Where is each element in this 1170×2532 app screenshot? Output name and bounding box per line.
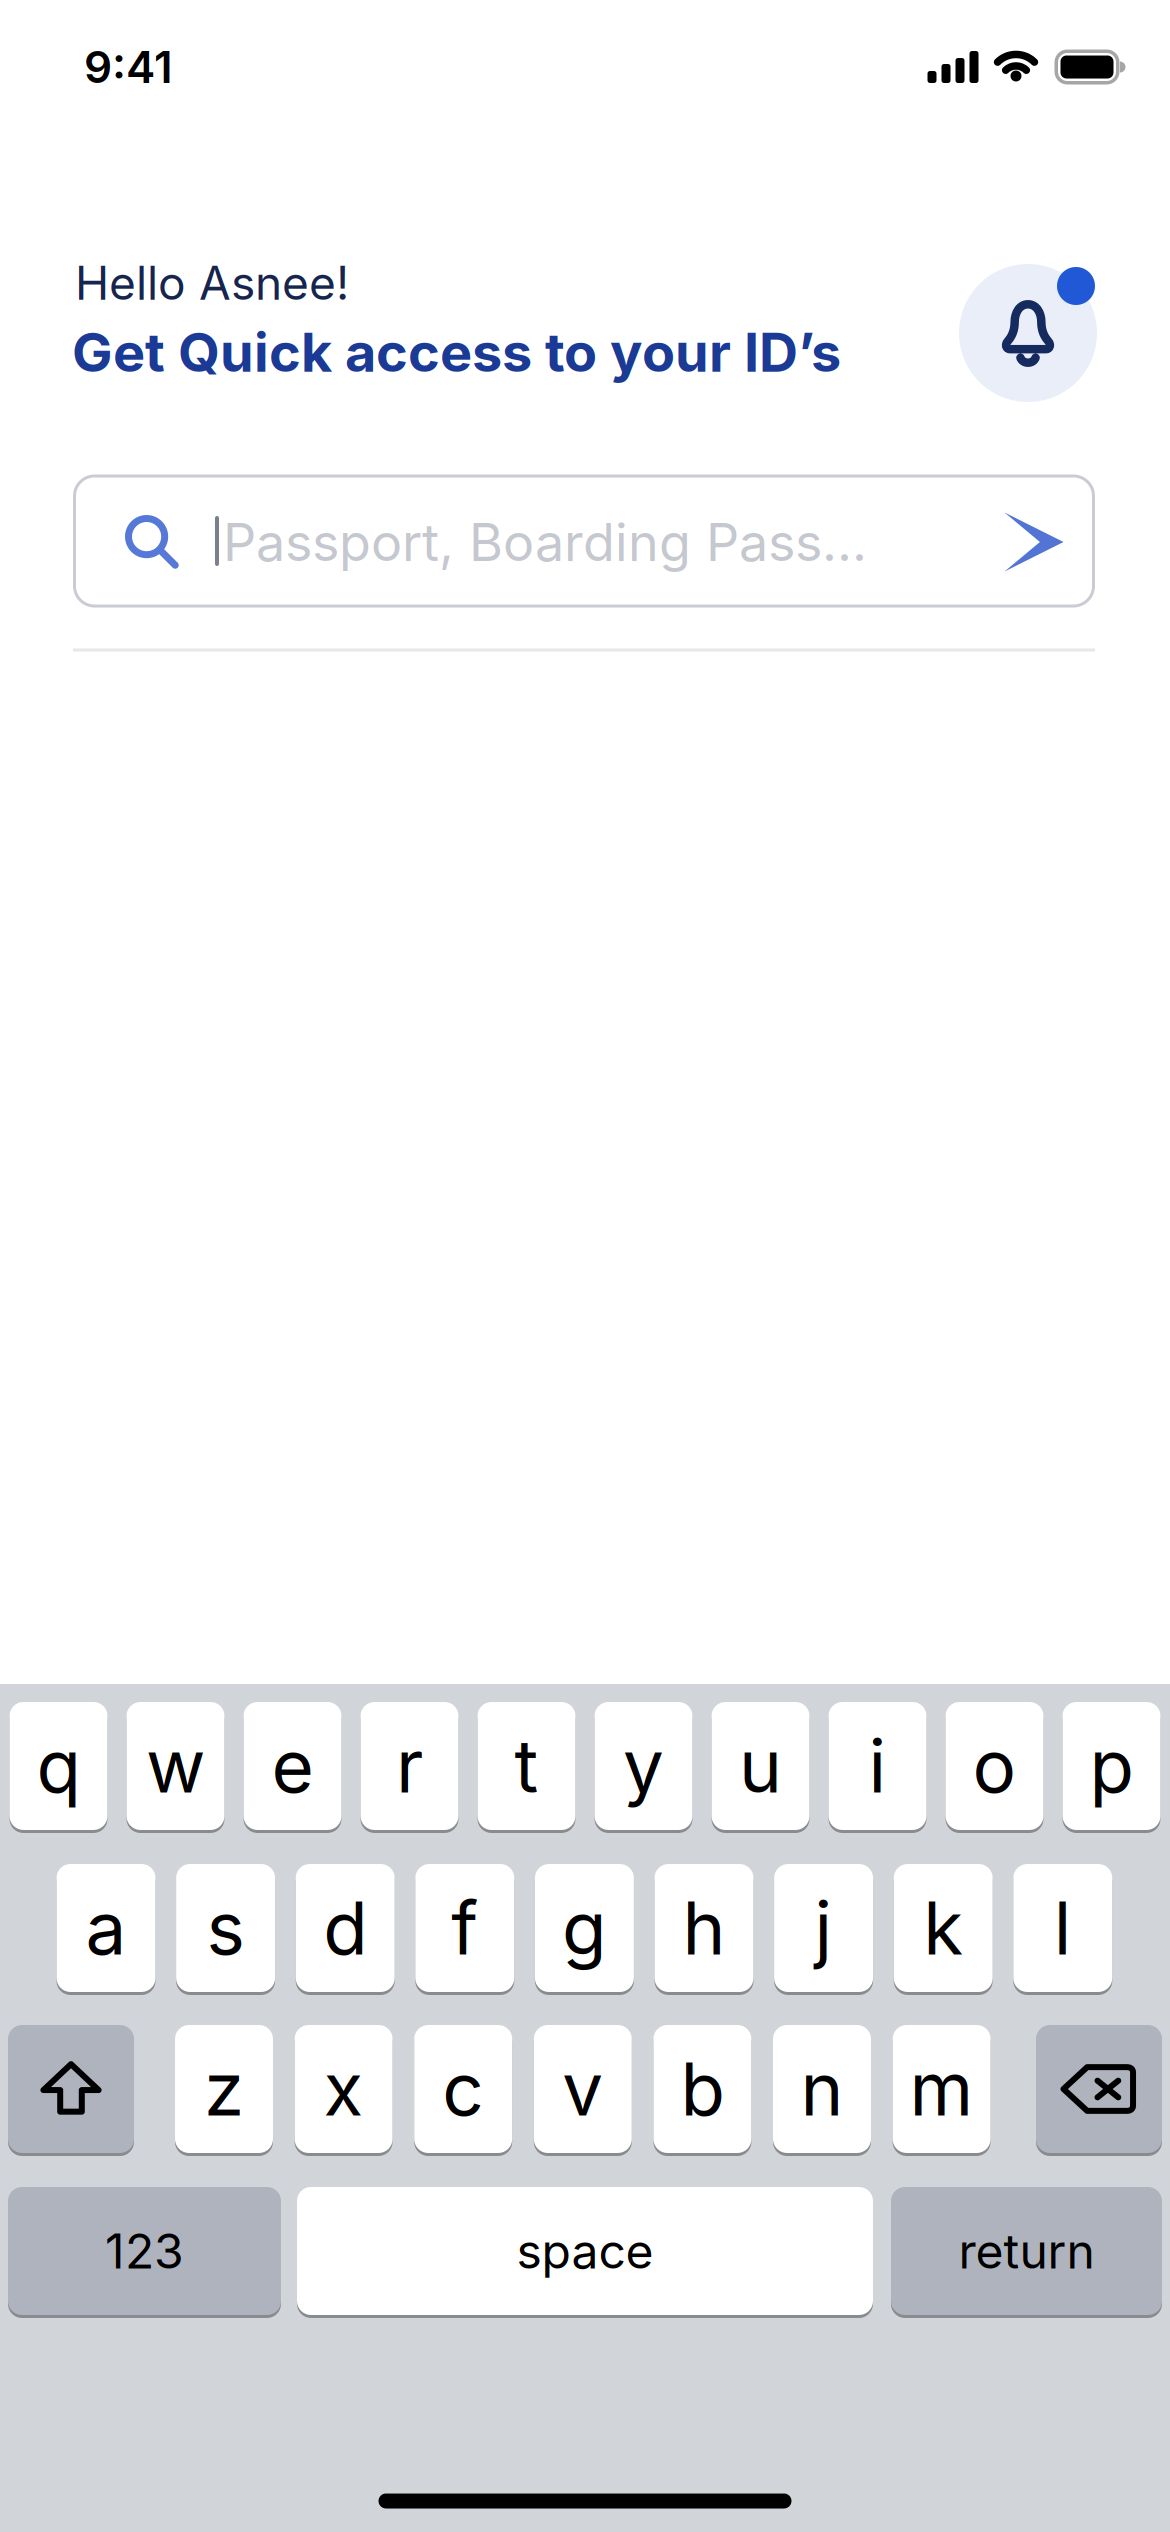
button[interactable]: Notifications: [959, 264, 1097, 402]
staticText: Get Quick access to your ID’s: [72, 319, 841, 385]
staticText: m: [910, 2045, 974, 2133]
button[interactable]: l: [1013, 1862, 1112, 1993]
staticText: e: [271, 1722, 313, 1810]
staticText: c: [442, 2045, 484, 2133]
button[interactable]: s: [176, 1862, 275, 1993]
staticText: a: [85, 1884, 126, 1972]
button[interactable]: q: [9, 1700, 107, 1831]
button[interactable]: z: [175, 2023, 273, 2154]
staticText: q: [36, 1722, 80, 1810]
staticText: r: [396, 1722, 423, 1810]
staticText: w: [146, 1722, 205, 1810]
button[interactable]: p: [1062, 1700, 1160, 1831]
staticText: i: [868, 1722, 886, 1810]
staticText: b: [680, 2045, 724, 2133]
staticText: k: [923, 1884, 963, 1972]
staticText: l: [1054, 1884, 1072, 1972]
staticText: x: [324, 2045, 364, 2133]
button[interactable]: r: [360, 1700, 458, 1831]
button[interactable]: v: [534, 2023, 632, 2154]
button[interactable]: Search: Passport, Boarding Pass: [73, 474, 1095, 607]
button[interactable]: j: [774, 1862, 873, 1993]
button[interactable]: o: [945, 1700, 1043, 1831]
button[interactable]: Shift: [8, 2023, 134, 2154]
button[interactable]: b: [653, 2023, 751, 2154]
button[interactable]: Search: [1004, 512, 1063, 571]
button[interactable]: x: [295, 2023, 393, 2154]
button[interactable]: a: [56, 1862, 155, 1993]
staticText: f: [451, 1884, 478, 1972]
button[interactable]: c: [414, 2023, 512, 2154]
staticText: n: [800, 2045, 843, 2133]
staticText: u: [739, 1722, 782, 1810]
button[interactable]: space: [297, 2185, 873, 2316]
button[interactable]: u: [711, 1700, 809, 1831]
button[interactable]: i: [828, 1700, 926, 1831]
button[interactable]: y: [594, 1700, 692, 1831]
button[interactable]: Delete: [1036, 2023, 1162, 2154]
staticText: o: [972, 1722, 1016, 1810]
button[interactable]: w: [126, 1700, 224, 1831]
staticText: g: [562, 1884, 607, 1972]
staticText: y: [623, 1722, 664, 1810]
button[interactable]: n: [773, 2023, 871, 2154]
button[interactable]: e: [243, 1700, 341, 1831]
button[interactable]: g: [535, 1862, 634, 1993]
button[interactable]: d: [296, 1862, 395, 1993]
staticText: Hello Asnee!: [75, 255, 349, 311]
staticText: 9:41: [84, 40, 173, 94]
staticText: v: [562, 2045, 603, 2133]
staticText: h: [682, 1884, 725, 1972]
button[interactable]: return: [891, 2185, 1162, 2316]
staticText: return: [958, 2222, 1094, 2280]
staticText: 123: [105, 2222, 184, 2280]
staticText: s: [207, 1884, 245, 1972]
staticText: j: [815, 1884, 833, 1972]
staticText: space: [516, 2222, 653, 2280]
button[interactable]: k: [894, 1862, 993, 1993]
staticText: t: [514, 1722, 538, 1810]
staticText: z: [204, 2045, 244, 2133]
staticText: p: [1089, 1722, 1133, 1810]
button[interactable]: 123: [8, 2185, 281, 2316]
button[interactable]: h: [654, 1862, 753, 1993]
button[interactable]: m: [893, 2023, 991, 2154]
staticText: d: [323, 1884, 367, 1972]
button[interactable]: t: [477, 1700, 575, 1831]
staticText: Passport, Boarding Pass...: [223, 510, 867, 573]
button[interactable]: f: [415, 1862, 514, 1993]
